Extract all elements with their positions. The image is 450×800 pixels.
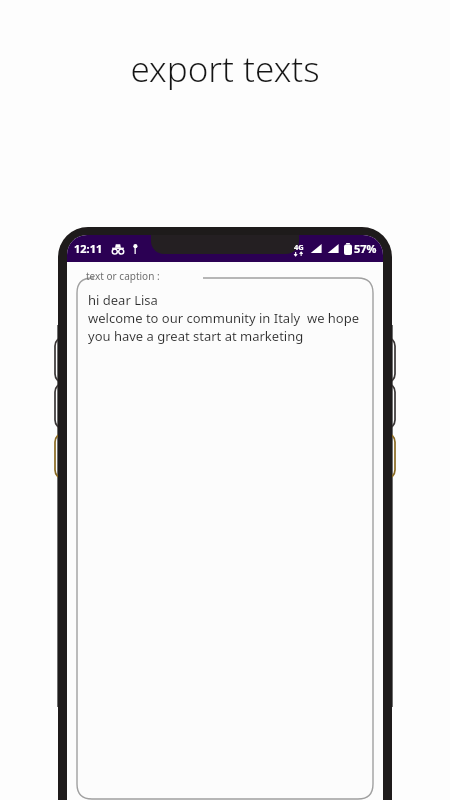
staticText: 4G [294,242,304,252]
staticText: 57% [354,241,377,256]
other: Incognito mode [111,243,125,254]
staticText: welcome to our community in Italy we hop… [88,309,360,327]
staticText: export texts [130,45,320,93]
staticText: hi dear Lisa [88,291,158,309]
staticText: you have a great start at marketing [88,327,304,345]
staticText: text or caption : [86,269,160,283]
staticText: 12:11 [74,241,103,256]
button[interactable]: text or caption : [77,270,373,799]
